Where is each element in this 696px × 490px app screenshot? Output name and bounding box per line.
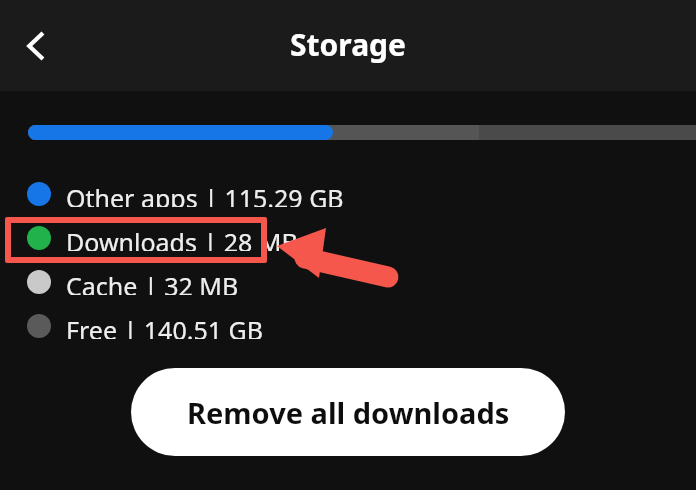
button[interactable]: Back [8, 18, 64, 74]
staticText: Storage [290, 24, 406, 65]
button[interactable]: Remove all downloads [131, 368, 565, 456]
button[interactable]: Downloads | 28 MB [0, 225, 696, 251]
staticText: Other apps | 115.29 GB [66, 181, 344, 207]
staticText: Remove all downloads [187, 393, 510, 432]
button[interactable]: Cache | 32 MB [0, 269, 696, 295]
button[interactable]: Other apps | 115.29 GB [0, 181, 696, 207]
staticText: Cache | 32 MB [66, 269, 239, 295]
button[interactable]: Free | 140.51 GB [0, 313, 696, 339]
staticText: Downloads | 28 MB [66, 225, 298, 251]
staticText: Free | 140.51 GB [66, 313, 263, 339]
